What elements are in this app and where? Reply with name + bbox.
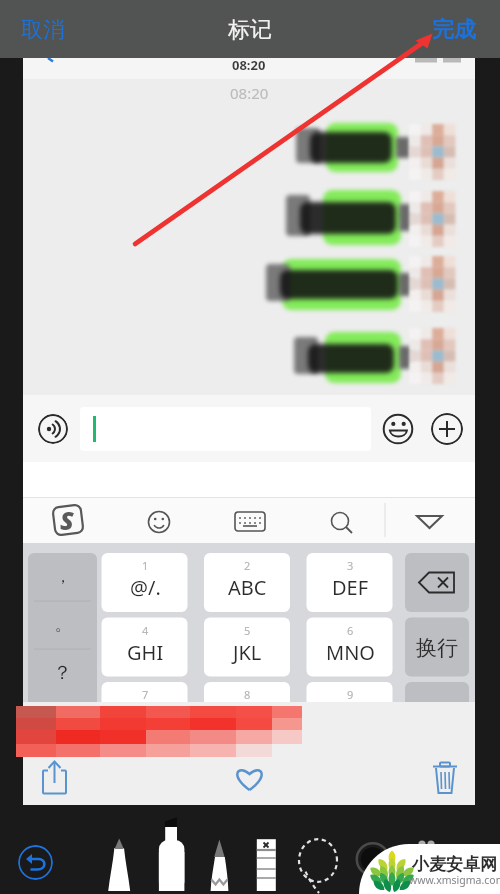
button[interactable]: ？ bbox=[28, 649, 97, 697]
button[interactable]: 7 bbox=[102, 682, 188, 741]
staticText: 9 bbox=[347, 687, 354, 702]
staticText: ABC bbox=[228, 574, 267, 601]
button[interactable]: Search bbox=[328, 503, 356, 531]
staticText: ， bbox=[55, 567, 71, 587]
button[interactable]: 5 bbox=[204, 618, 290, 677]
staticText: MNO bbox=[326, 639, 375, 666]
button[interactable]: Keyboard layout bbox=[235, 503, 267, 535]
button[interactable]: 4 bbox=[102, 618, 188, 677]
staticText: @/. bbox=[130, 574, 161, 601]
button[interactable]: ， bbox=[28, 553, 97, 601]
staticText: 08:20 bbox=[232, 56, 266, 74]
button[interactable]: 。 bbox=[28, 601, 97, 649]
button[interactable]: 2 bbox=[204, 553, 290, 612]
staticText: 3 bbox=[347, 558, 354, 573]
staticText: S bbox=[60, 503, 74, 537]
staticText: 标记 bbox=[228, 16, 272, 44]
staticText: 08:20 bbox=[230, 83, 269, 103]
staticText: 完成 bbox=[432, 16, 476, 44]
button[interactable]: 1 bbox=[102, 553, 188, 612]
staticText: 。 bbox=[55, 615, 71, 635]
staticText: www.xmsigma.com bbox=[409, 873, 500, 887]
staticText: 7 bbox=[142, 687, 149, 702]
staticText: 2 bbox=[244, 558, 251, 573]
button[interactable]: 取消 bbox=[15, 10, 71, 50]
button[interactable]: 3 bbox=[307, 553, 393, 612]
button[interactable]: 完成 bbox=[426, 10, 482, 50]
button[interactable] bbox=[80, 407, 371, 451]
button[interactable]: Undo bbox=[18, 845, 53, 880]
button[interactable]: Sogou input bbox=[53, 501, 85, 533]
staticText: 换行 bbox=[416, 635, 458, 661]
button[interactable]: 6 bbox=[307, 618, 393, 677]
staticText: 1 bbox=[142, 558, 149, 573]
button[interactable]: 9 bbox=[307, 682, 393, 741]
staticText: 6 bbox=[347, 623, 354, 638]
button[interactable]: Emoji bbox=[382, 413, 414, 445]
button[interactable]: Emoticons bbox=[148, 503, 176, 531]
staticText: 5 bbox=[244, 623, 251, 638]
staticText: 4 bbox=[142, 623, 149, 638]
staticText: 小麦安卓网 bbox=[412, 854, 497, 875]
button[interactable]: Voice message bbox=[38, 414, 68, 444]
button[interactable]: More bbox=[431, 413, 463, 445]
staticText: JKL bbox=[233, 639, 262, 666]
button[interactable]: Hide keyboard bbox=[415, 503, 445, 533]
staticText: ？ bbox=[53, 661, 72, 685]
button[interactable]: 8 bbox=[204, 682, 290, 741]
button[interactable]: 换行 bbox=[405, 618, 469, 677]
staticText: 8 bbox=[244, 687, 251, 702]
staticText: GHI bbox=[127, 639, 164, 666]
staticText: DEF bbox=[332, 574, 369, 601]
staticText: 取消 bbox=[21, 16, 65, 44]
